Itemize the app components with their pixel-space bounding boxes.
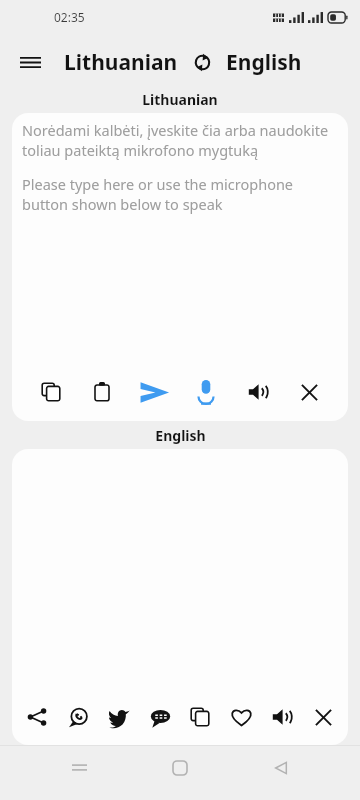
button[interactable]: SMS (141, 698, 179, 736)
button[interactable]: Favorite (222, 698, 260, 736)
button[interactable]: Speak (239, 373, 277, 411)
staticText: Lithuanian (142, 90, 218, 109)
button[interactable]: Speak (263, 698, 301, 736)
button[interactable]: Microphone (187, 373, 225, 411)
button[interactable]: Norėdami kalbėti, įveskite čia arba naud… (22, 120, 338, 363)
button[interactable]: Copy (181, 698, 219, 736)
button[interactable]: Translate (135, 373, 173, 411)
staticText: Norėdami kalbėti, įveskite čia arba naud… (22, 120, 338, 160)
staticText: 02:35 (54, 9, 85, 25)
button[interactable]: WhatsApp (59, 698, 97, 736)
button[interactable]: Lithuanian (64, 48, 178, 77)
button[interactable]: Share (18, 698, 56, 736)
button[interactable]: Back (259, 746, 303, 789)
button[interactable]: Recents (57, 746, 101, 789)
staticText: Please type here or use the microphone b… (22, 174, 338, 214)
button[interactable]: Copy (32, 373, 70, 411)
button[interactable]: Swap languages (187, 47, 217, 77)
staticText: English (155, 426, 206, 445)
button[interactable]: English (226, 48, 302, 77)
button[interactable]: Home (158, 746, 202, 789)
button[interactable]: Clear (304, 698, 342, 736)
button[interactable]: Paste (83, 373, 121, 411)
button[interactable]: Clear (290, 373, 328, 411)
button[interactable]: Twitter (100, 698, 138, 736)
button[interactable]: Menu (8, 40, 52, 84)
